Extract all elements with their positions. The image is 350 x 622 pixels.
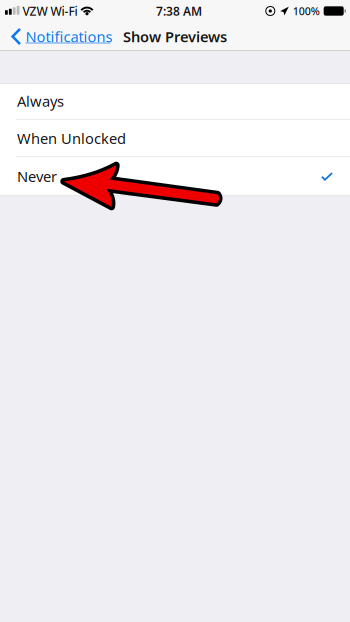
button[interactable]: Never xyxy=(0,157,350,196)
staticText: Always xyxy=(17,91,64,111)
button[interactable]: Always xyxy=(0,83,350,120)
staticText: Notifications xyxy=(25,27,112,46)
staticText: 100% xyxy=(293,4,320,18)
staticText: 7:38 AM xyxy=(156,3,202,19)
button[interactable]: When Unlocked xyxy=(0,120,350,157)
staticText: When Unlocked xyxy=(17,128,126,148)
staticText: Never xyxy=(17,167,57,186)
button[interactable]: Back to Notifications xyxy=(0,21,117,51)
staticText: Show Previews xyxy=(123,27,227,46)
staticText: VZW Wi-Fi xyxy=(22,3,77,19)
